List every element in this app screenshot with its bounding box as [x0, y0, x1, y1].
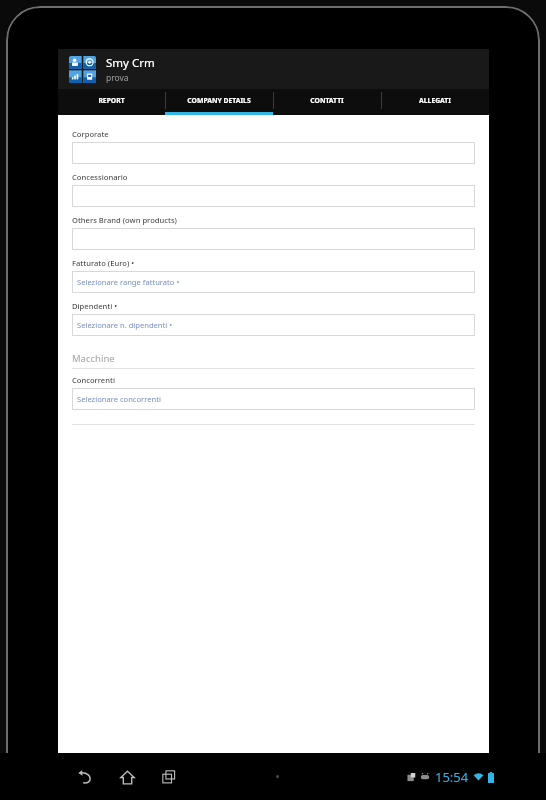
- button[interactable]: Home: [110, 760, 144, 794]
- button[interactable]: Selezionare n. dipendenti •: [72, 314, 475, 336]
- button[interactable]: [72, 185, 475, 207]
- staticText: REPORT: [98, 96, 125, 105]
- button[interactable]: ALLEGATI: [381, 89, 489, 112]
- staticText: COMPANY DETAILS: [187, 96, 251, 105]
- staticText: Selezionare concorrenti: [77, 394, 161, 404]
- button[interactable]: [72, 142, 475, 164]
- button[interactable]: REPORT: [58, 89, 165, 112]
- button[interactable]: CONTATTI: [273, 89, 381, 112]
- staticText: Fatturato (Euro) •: [72, 258, 135, 268]
- button[interactable]: Selezionare concorrenti: [72, 388, 475, 410]
- staticText: Selezionare range fatturato •: [77, 277, 180, 287]
- button[interactable]: Selezionare range fatturato •: [72, 271, 475, 293]
- staticText: prova: [106, 72, 129, 84]
- button[interactable]: COMPANY DETAILS: [165, 89, 273, 112]
- staticText: Corporate: [72, 129, 109, 139]
- staticText: Selezionare n. dipendenti •: [77, 320, 173, 330]
- staticText: Concessionario: [72, 172, 128, 182]
- staticText: Concorrenti: [72, 375, 115, 385]
- button[interactable]: Back: [68, 760, 102, 794]
- staticText: Dipendenti •: [72, 301, 118, 311]
- other: App icon: [69, 56, 96, 83]
- staticText: Others Brand (own products): [72, 215, 177, 225]
- staticText: Macchine: [72, 352, 115, 365]
- button[interactable]: [72, 228, 475, 250]
- staticText: CONTATTI: [310, 96, 344, 105]
- staticText: Smy Crm: [106, 55, 155, 71]
- staticText: 15:54: [435, 768, 469, 786]
- staticText: ALLEGATI: [419, 96, 451, 105]
- button[interactable]: Recent apps: [152, 760, 186, 794]
